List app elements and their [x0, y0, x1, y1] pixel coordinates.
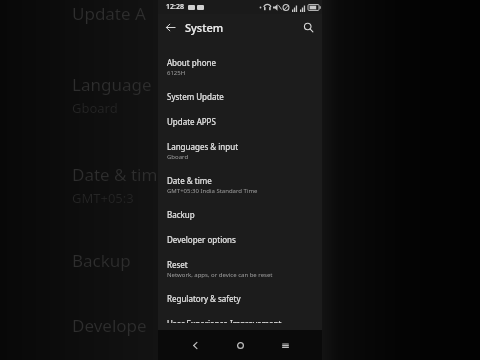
- staticText: Regulatory & safety: [167, 293, 241, 304]
- staticText: Backup: [167, 209, 195, 220]
- staticText: Network, apps, or device can be reset: [167, 271, 273, 279]
- staticText: System: [185, 20, 224, 35]
- staticText: Languages & input: [167, 141, 239, 152]
- button[interactable]: System Update: [158, 84, 322, 109]
- button[interactable]: Back: [158, 15, 182, 39]
- staticText: About phone: [167, 57, 216, 68]
- staticText: 6125H: [167, 69, 186, 77]
- button[interactable]: Search: [296, 15, 320, 39]
- staticText: 12:28: [166, 2, 184, 12]
- button[interactable]: Reset: [158, 252, 322, 286]
- staticText: Developer options: [167, 234, 236, 245]
- staticText: Update A: [72, 2, 146, 25]
- staticText: GMT+05:30 India Standard Time: [167, 187, 258, 195]
- button[interactable]: Backup: [158, 202, 322, 227]
- staticText: Gboard: [72, 99, 118, 117]
- staticText: User Experience Improvement Program: [167, 318, 314, 323]
- staticText: Backup: [72, 249, 131, 272]
- staticText: Update APPS: [167, 116, 216, 127]
- button[interactable]: About phone: [158, 50, 322, 84]
- button[interactable]: User Experience Improvement Program: [158, 311, 322, 330]
- button[interactable]: Back: [184, 334, 206, 356]
- button[interactable]: Developer options: [158, 227, 322, 252]
- staticText: Language: [72, 73, 152, 96]
- button[interactable]: Home: [229, 334, 251, 356]
- button[interactable]: Update APPS: [158, 109, 322, 134]
- staticText: Develope: [72, 314, 147, 337]
- staticText: System Update: [167, 91, 224, 102]
- button[interactable]: Date & time: [158, 168, 322, 202]
- staticText: Reset: [167, 259, 188, 270]
- button[interactable]: Recent apps: [274, 334, 296, 356]
- staticText: Date & time: [167, 175, 212, 186]
- button[interactable]: Regulatory & safety: [158, 286, 322, 311]
- staticText: Gboard: [167, 153, 189, 161]
- button[interactable]: Languages & input: [158, 134, 322, 168]
- staticText: Date & tim: [72, 163, 158, 186]
- staticText: GMT+05:3: [72, 189, 134, 207]
